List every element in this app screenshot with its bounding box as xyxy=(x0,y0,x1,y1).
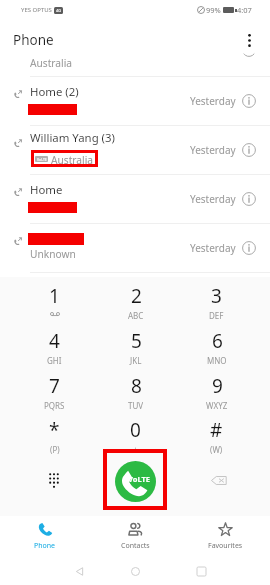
button[interactable]: 9 xyxy=(176,373,257,413)
staticText: Phone xyxy=(13,31,54,49)
staticText: VoLTE xyxy=(37,157,47,162)
staticText: 1 xyxy=(49,283,60,309)
staticText: PQRS xyxy=(44,400,65,411)
button[interactable]: 8 xyxy=(95,373,176,413)
staticText: Contacts xyxy=(121,541,150,551)
staticText: JKL xyxy=(130,355,142,366)
button[interactable]: Favourites xyxy=(180,516,270,556)
staticText: Phone xyxy=(34,541,56,551)
button[interactable]: Phone xyxy=(0,516,90,556)
button[interactable]: 0 xyxy=(95,417,176,457)
button[interactable]: Home xyxy=(124,560,146,582)
button[interactable]: More options xyxy=(235,26,263,54)
staticText: 99% xyxy=(206,5,221,15)
staticText: GHI xyxy=(47,355,62,366)
staticText: VoLTE xyxy=(128,474,150,484)
staticText: Yesterday xyxy=(190,94,236,108)
button[interactable]: William Yang (3) xyxy=(0,126,270,174)
button[interactable]: Unknown xyxy=(0,224,270,272)
button[interactable]: * xyxy=(13,417,95,457)
button[interactable]: Dialpad xyxy=(41,467,67,493)
button[interactable]: Call details xyxy=(237,236,261,260)
button[interactable]: 6 xyxy=(176,328,257,368)
button[interactable]: Recents xyxy=(190,560,212,582)
staticText: William Yang (3) xyxy=(30,130,115,146)
staticText: 6 xyxy=(212,328,223,354)
button[interactable]: 7 xyxy=(13,373,95,413)
staticText: + xyxy=(133,444,138,455)
button[interactable]: 5 xyxy=(95,328,176,368)
staticText: Yesterday xyxy=(190,192,236,206)
staticText: Home xyxy=(30,182,63,198)
staticText: 3 xyxy=(211,283,222,309)
staticText: 4G xyxy=(56,8,62,13)
staticText: 4:07 xyxy=(237,5,252,15)
staticText: 9 xyxy=(212,373,223,399)
button[interactable]: Call xyxy=(115,461,156,502)
button[interactable]: Backspace xyxy=(206,467,232,493)
staticText: 7 xyxy=(49,373,60,399)
staticText: YES OPTUS xyxy=(21,6,52,14)
staticText: (P) xyxy=(50,444,60,455)
staticText: 4 xyxy=(49,328,60,354)
staticText: 2 xyxy=(131,283,142,309)
staticText: WXYZ xyxy=(206,400,228,411)
button[interactable]: 3 xyxy=(176,283,257,323)
staticText: 0 xyxy=(130,417,141,443)
button[interactable]: # xyxy=(176,417,257,457)
staticText: (W) xyxy=(210,444,223,455)
staticText: MNO xyxy=(207,355,227,366)
staticText: # xyxy=(210,417,223,443)
staticText: Home (2) xyxy=(30,84,79,100)
button[interactable]: 4 xyxy=(13,328,95,368)
staticText: 5 xyxy=(131,328,142,354)
button[interactable]: Call details xyxy=(237,138,261,162)
staticText: Unknown xyxy=(30,247,76,261)
staticText: TUV xyxy=(128,400,144,411)
button[interactable]: 2 xyxy=(95,283,176,323)
staticText: Favourites xyxy=(208,541,243,551)
button[interactable]: Call details xyxy=(237,187,261,211)
button[interactable]: Back xyxy=(68,560,90,582)
staticText: Australia xyxy=(51,153,94,164)
button[interactable]: Contacts xyxy=(90,516,180,556)
staticText: 8 xyxy=(131,373,142,399)
staticText: Yesterday xyxy=(190,241,236,255)
button[interactable]: 1 xyxy=(13,283,95,323)
staticText: ABC xyxy=(128,310,144,321)
staticText: Yesterday xyxy=(190,143,236,157)
staticText: Australia xyxy=(30,56,73,70)
button[interactable]: Home xyxy=(0,175,270,223)
button[interactable]: Call details xyxy=(237,89,261,113)
staticText: * xyxy=(49,417,60,443)
staticText: DEF xyxy=(209,310,224,321)
button[interactable]: Home (2) xyxy=(0,77,270,125)
